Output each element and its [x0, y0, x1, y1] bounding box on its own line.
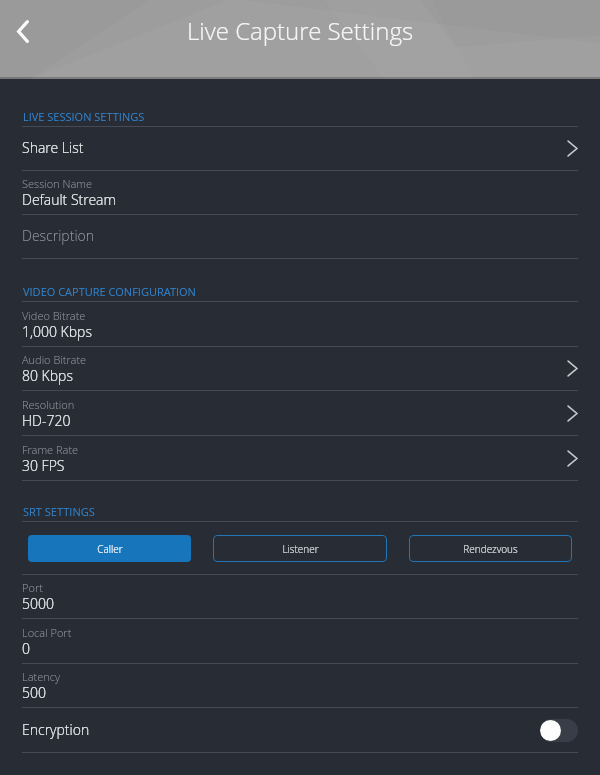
staticText: SRT SETTINGS	[23, 504, 95, 519]
staticText: Share List	[22, 138, 84, 157]
staticText: 5000	[22, 594, 54, 613]
staticText: Audio Bitrate	[22, 352, 87, 367]
staticText: Default Stream	[22, 190, 116, 209]
staticText: 0	[22, 639, 30, 658]
button[interactable]: Latency	[0, 664, 600, 707]
button[interactable]: Resolution	[0, 391, 600, 435]
staticText: HD-720	[22, 411, 71, 430]
button[interactable]: Listener	[213, 535, 387, 562]
button[interactable]: Description	[0, 215, 600, 258]
staticText: Resolution	[22, 397, 75, 412]
staticText: Live Capture Settings	[187, 14, 414, 47]
staticText: Latency	[22, 669, 60, 684]
staticText: LIVE SESSION SETTINGS	[23, 109, 145, 124]
button[interactable]: Session Name	[0, 171, 600, 214]
button[interactable]: Video Bitrate	[0, 302, 600, 346]
staticText: VIDEO CAPTURE CONFIGURATION	[23, 284, 196, 299]
staticText: Local Port	[22, 625, 72, 640]
button[interactable]: Local Port	[0, 619, 600, 663]
staticText: Caller	[97, 542, 123, 556]
button[interactable]: Back	[1, 9, 45, 53]
button[interactable]: Audio Bitrate	[0, 347, 600, 390]
staticText: Listener	[282, 542, 319, 556]
staticText: Video Bitrate	[22, 308, 86, 323]
staticText: Session Name	[22, 176, 93, 191]
staticText: Description	[22, 226, 95, 245]
staticText: Encryption	[22, 720, 90, 739]
button[interactable]: Port	[0, 575, 600, 618]
staticText: Port	[22, 580, 43, 595]
staticText: 1,000 Kbps	[22, 322, 92, 341]
staticText: 30 FPS	[22, 456, 65, 475]
button[interactable]: Encryption	[0, 708, 600, 752]
button[interactable]: Caller	[28, 535, 191, 562]
staticText: 80 Kbps	[22, 366, 73, 385]
button[interactable]: Rendezvous	[409, 535, 572, 562]
staticText: Rendezvous	[463, 542, 518, 556]
button[interactable]: Frame Rate	[0, 436, 600, 480]
staticText: Frame Rate	[22, 442, 79, 457]
staticText: 500	[22, 683, 46, 702]
button[interactable]: Share List	[0, 127, 600, 170]
